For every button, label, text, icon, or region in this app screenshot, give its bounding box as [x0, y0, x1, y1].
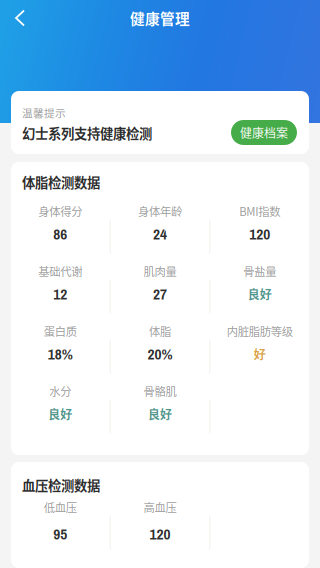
staticText: 12 [53, 284, 67, 304]
staticText: 健康档案 [240, 124, 288, 141]
staticText: BMI指数 [239, 203, 280, 219]
staticText: 24 [153, 224, 167, 244]
staticText: 温馨提示 [22, 105, 66, 120]
button[interactable]: 健康档案 [231, 120, 297, 145]
staticText: 良好 [148, 405, 172, 423]
staticText: 水分 [49, 383, 71, 399]
staticText: 体脂 [149, 323, 171, 339]
staticText: 身体得分 [38, 203, 82, 219]
staticText: 27 [153, 284, 167, 304]
staticText: 血压检测数据 [22, 475, 100, 495]
staticText: 骨盐量 [243, 263, 276, 279]
staticText: 120 [249, 224, 270, 244]
staticText: 内脏脂肪等级 [227, 323, 293, 339]
staticText: 骨骼肌 [143, 383, 176, 399]
staticText: 良好 [48, 405, 72, 423]
staticText: 身体年龄 [138, 203, 182, 219]
staticText: 基础代谢 [38, 263, 82, 279]
button[interactable]: Back [0, 1, 44, 35]
staticText: 95 [53, 524, 67, 544]
staticText: 蛋白质 [44, 323, 77, 339]
staticText: 120 [149, 524, 170, 544]
staticText: 幻士系列支持健康检测 [22, 123, 152, 143]
staticText: 好 [254, 345, 266, 363]
staticText: 18% [48, 344, 73, 364]
staticText: 肌肉量 [143, 263, 176, 279]
staticText: 86 [53, 224, 67, 244]
staticText: 20% [147, 344, 172, 364]
staticText: 体脂检测数据 [22, 172, 100, 192]
staticText: 健康管理 [130, 7, 190, 29]
staticText: 低血压 [44, 499, 77, 515]
staticText: 良好 [248, 285, 272, 303]
staticText: 高血压 [143, 499, 176, 515]
